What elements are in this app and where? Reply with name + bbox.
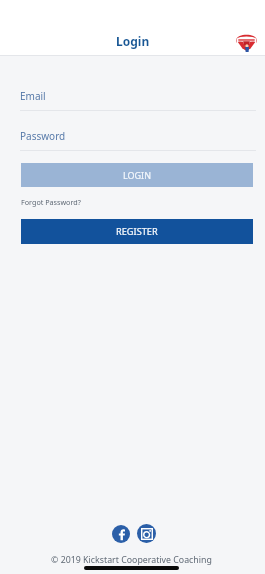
- button[interactable]: Password: [20, 125, 256, 151]
- button[interactable]: Instagram: [137, 524, 156, 543]
- staticText: Password: [20, 129, 66, 143]
- staticText: REGISTER: [116, 225, 158, 238]
- staticText: Forgot Password?: [21, 197, 81, 207]
- button[interactable]: Email: [20, 85, 256, 111]
- staticText: Email: [20, 89, 46, 103]
- button[interactable]: Facebook: [112, 525, 130, 543]
- button[interactable]: REGISTER: [21, 219, 253, 244]
- staticText: LOGIN: [123, 169, 152, 181]
- button[interactable]: Forgot Password?: [21, 197, 81, 207]
- button[interactable]: Kickstart logo: [236, 33, 257, 52]
- button[interactable]: LOGIN: [21, 163, 253, 187]
- staticText: Login: [116, 33, 150, 49]
- staticText: © 2019 Kickstart Cooperative Coaching: [51, 554, 212, 566]
